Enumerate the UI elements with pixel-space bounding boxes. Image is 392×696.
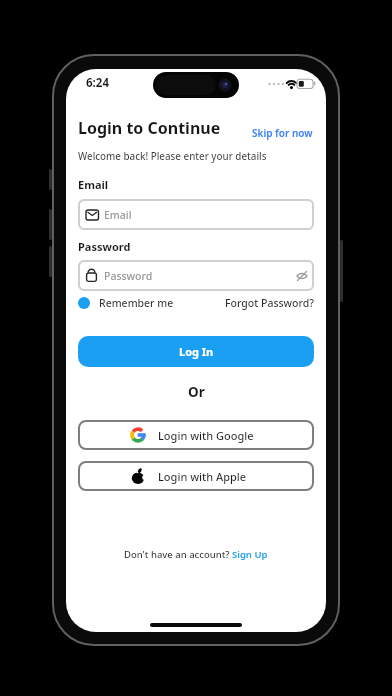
button[interactable]: Remember me [78,296,174,310]
staticText: Password [78,239,131,254]
staticText: Email [78,177,109,192]
staticText: Password [104,269,153,283]
button[interactable]: Sign Up [232,548,268,561]
staticText: Remember me [99,296,174,310]
staticText: Skip for now [252,126,313,140]
button[interactable]: Forgot Password? [225,296,314,310]
staticText: Don't have an account? [124,548,232,561]
button[interactable]: Skip for now [66,126,313,140]
button[interactable]: Log In [78,336,314,367]
staticText: Login to Continue [78,117,221,139]
button[interactable]: Email [78,199,314,230]
button[interactable]: Password [78,260,314,291]
staticText: Welcome back! Please enter your details [78,150,267,163]
staticText: Log In [179,344,214,359]
staticText: Sign Up [232,548,268,561]
staticText: Login with Apple [158,469,247,484]
staticText: Or [188,383,205,401]
button[interactable]: Login with Google [78,420,314,450]
staticText: Forgot Password? [225,296,314,310]
staticText: 6:24 [86,75,109,91]
staticText: Login with Google [158,428,254,443]
staticText: Email [104,208,132,222]
button[interactable]: Login with Apple [78,461,314,491]
button[interactable] [292,266,312,286]
